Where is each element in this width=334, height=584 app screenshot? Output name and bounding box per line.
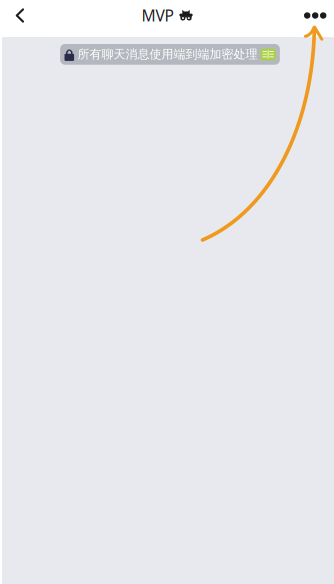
staticText: 所有聊天消息使用端到端加密处理 (77, 47, 257, 62)
button[interactable]: More options (278, 0, 334, 31)
staticText: MVP (141, 5, 173, 26)
button[interactable]: Back (0, 0, 56, 31)
